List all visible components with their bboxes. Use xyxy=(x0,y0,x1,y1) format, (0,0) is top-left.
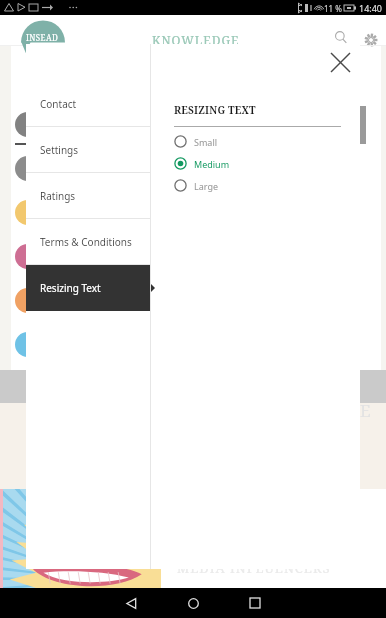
button[interactable]: Large xyxy=(174,178,219,193)
button[interactable]: Terms & Conditions xyxy=(26,219,150,265)
staticText: Medium xyxy=(194,158,230,170)
staticText: Resizing Text xyxy=(40,281,101,295)
staticText: Author name xyxy=(48,126,92,136)
staticText: Settings xyxy=(40,143,79,157)
staticText: Author name xyxy=(48,258,92,268)
button[interactable]: Back xyxy=(100,588,162,618)
button[interactable]: Article headline goes here xyxy=(11,234,381,278)
staticText: Author name xyxy=(48,170,92,180)
staticText: RESIZING TEXT xyxy=(174,103,256,117)
staticText: MEDIA INFLUENCERS xyxy=(177,559,331,577)
staticText: Contact xyxy=(40,97,77,111)
staticText: Author name xyxy=(48,302,92,312)
staticText: Author name xyxy=(48,214,92,224)
staticText: INSEAD xyxy=(26,32,59,43)
staticText: 14:40 xyxy=(359,2,383,14)
button[interactable]: Article headline goes here xyxy=(11,146,381,190)
staticText: KNOWLEDGE xyxy=(152,32,240,48)
staticText: 11 % xyxy=(324,3,342,14)
staticText: Large xyxy=(194,180,219,192)
button[interactable]: Recents xyxy=(224,588,286,618)
button[interactable]: Article headline goes here xyxy=(11,102,381,146)
button[interactable]: Medium xyxy=(174,156,230,171)
button[interactable]: Settings xyxy=(357,26,384,53)
button[interactable]: Small xyxy=(174,134,218,149)
staticText: E xyxy=(360,399,371,422)
button[interactable]: Article headline goes here xyxy=(11,278,381,322)
staticText: Article headline goes here xyxy=(48,288,158,300)
staticText: Small xyxy=(194,136,218,148)
button[interactable]: Home xyxy=(162,588,224,618)
staticText: Ratings xyxy=(40,189,76,203)
button[interactable]: Resizing Text xyxy=(26,265,150,311)
button[interactable]: Close xyxy=(322,44,358,80)
staticText: Terms & Conditions xyxy=(40,235,132,249)
staticText: Article headline goes here xyxy=(48,156,158,168)
button[interactable]: Article headline goes here xyxy=(11,322,381,366)
button[interactable]: Ratings xyxy=(26,173,150,219)
staticText: Article headline goes here xyxy=(48,200,158,212)
staticText: Article headline goes here xyxy=(48,244,158,256)
button[interactable]: Settings xyxy=(26,127,150,173)
button[interactable]: Contact xyxy=(26,81,150,127)
button[interactable]: Search xyxy=(327,24,354,51)
button[interactable]: Article headline goes here xyxy=(11,190,381,234)
